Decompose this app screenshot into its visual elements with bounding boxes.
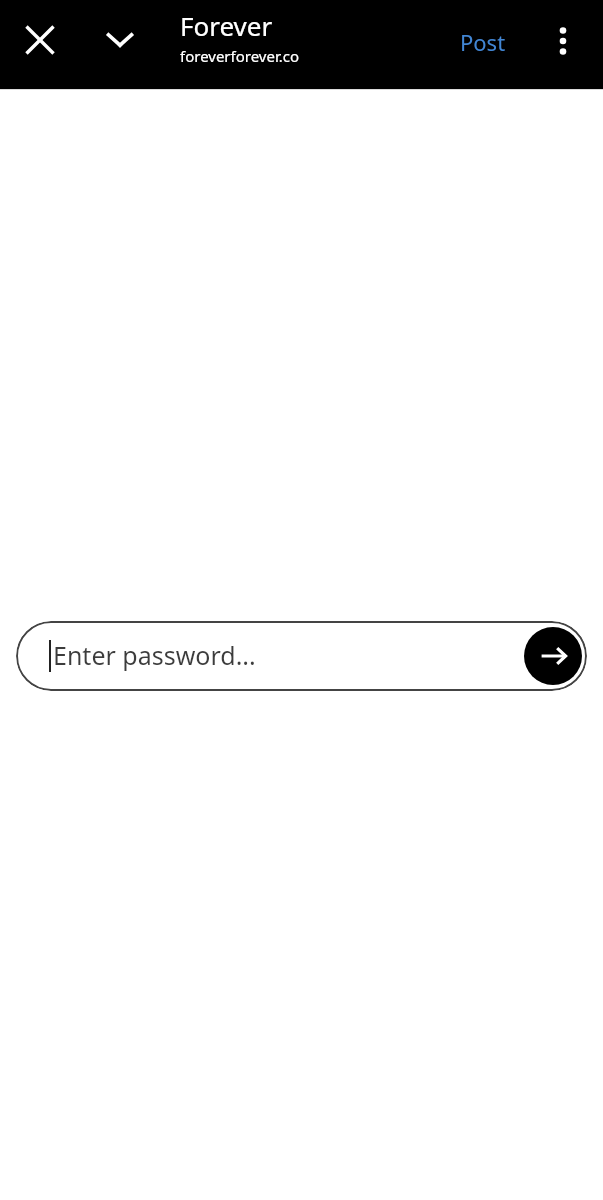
button[interactable]: Submit password [524, 627, 582, 685]
staticText: foreverforever.co [180, 46, 300, 66]
button[interactable]: Close [16, 16, 64, 64]
button[interactable]: Post [446, 16, 520, 68]
button[interactable]: Forever [180, 8, 300, 66]
button[interactable]: More options [539, 17, 587, 65]
button[interactable]: Collapse [96, 16, 144, 64]
staticText: Forever [180, 8, 273, 43]
staticText: Enter password... [53, 638, 256, 672]
staticText: Post [460, 27, 506, 57]
button[interactable]: Enter password... [16, 621, 587, 691]
